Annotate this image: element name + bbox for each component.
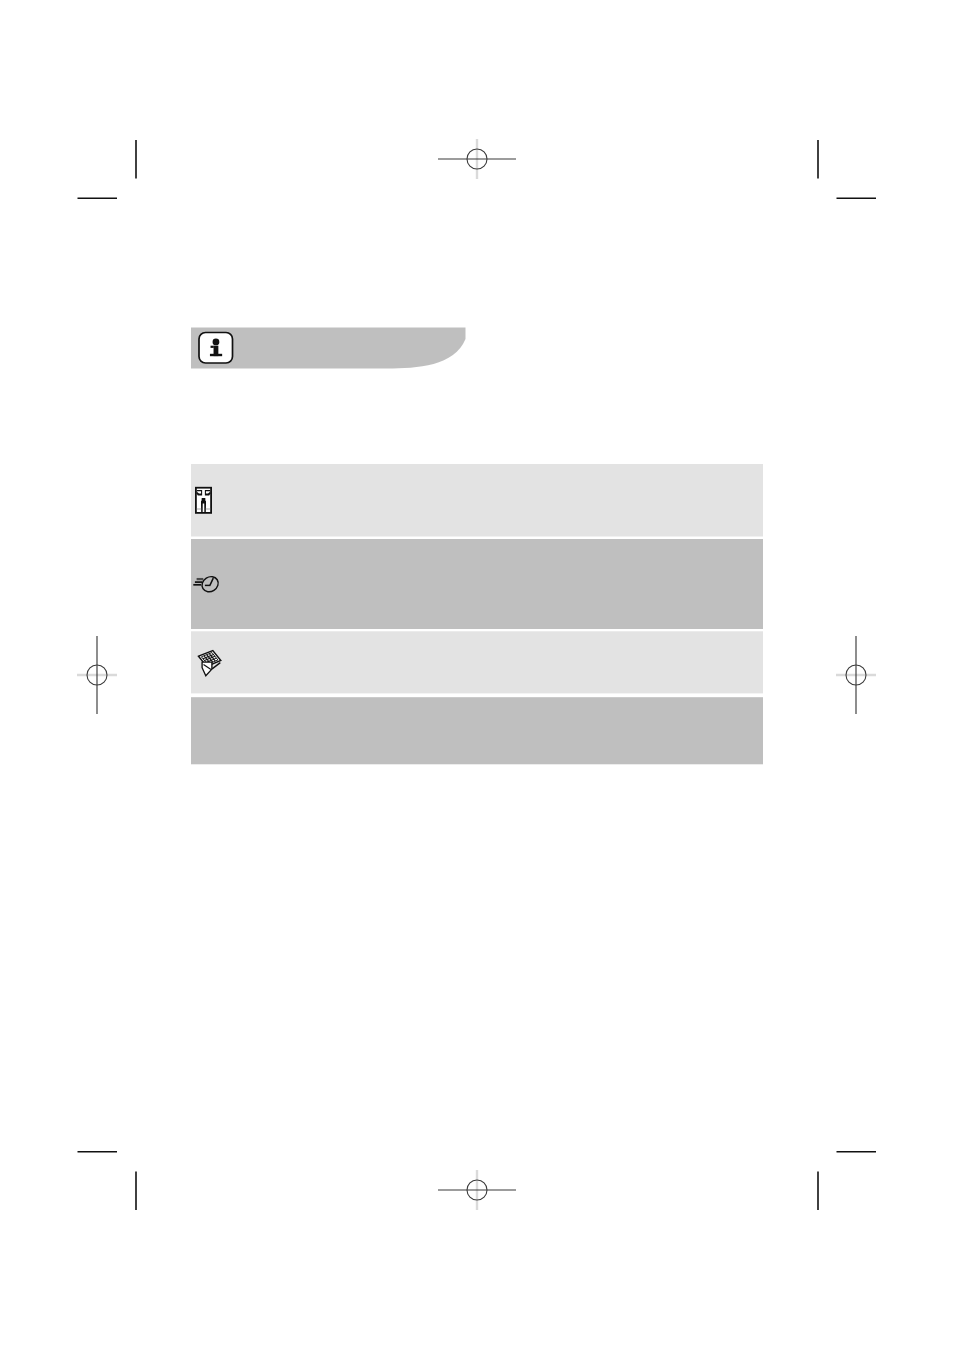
button[interactable]: Information note xyxy=(191,328,466,369)
button[interactable]: Quick wash programme xyxy=(191,539,763,629)
button[interactable]: Duvet programme xyxy=(191,631,763,693)
button[interactable]: Trousers programme xyxy=(191,464,763,537)
